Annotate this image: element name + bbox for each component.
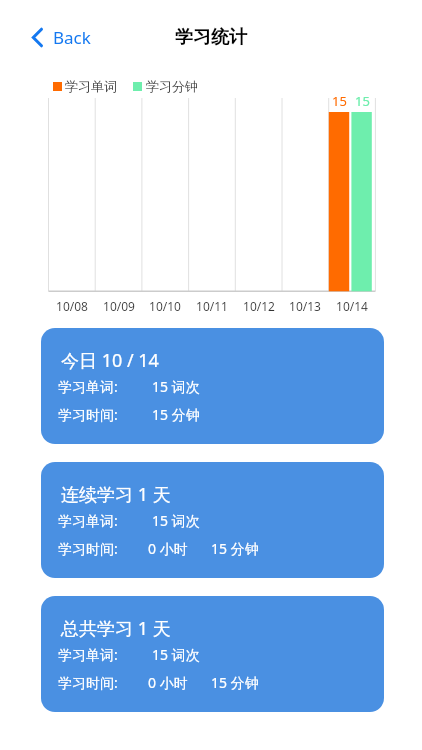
staticText: 0 小时	[148, 539, 188, 558]
staticText: 10/12	[243, 298, 275, 314]
staticText: 10/09	[103, 298, 135, 314]
button[interactable]: 连续学习 1 天	[41, 462, 384, 578]
staticText: 学习时间:	[58, 673, 118, 692]
staticText: 学习统计	[175, 26, 247, 49]
staticText: 15	[355, 92, 370, 110]
staticText: 10/11	[196, 298, 228, 314]
staticText: 今日 10 / 14	[61, 348, 159, 373]
staticText: 15	[332, 92, 347, 110]
staticText: 学习单词:	[58, 645, 118, 664]
staticText: 学习时间:	[58, 405, 118, 424]
staticText: 学习分钟	[146, 78, 198, 94]
staticText: 10/08	[56, 298, 88, 314]
button[interactable]: 总共学习 1 天	[41, 596, 384, 712]
staticText: 总共学习 1 天	[61, 616, 171, 641]
staticText: 15 分钟	[211, 539, 259, 558]
staticText: 15 分钟	[152, 405, 200, 424]
staticText: Back	[53, 26, 91, 49]
staticText: 15 词次	[152, 645, 200, 664]
staticText: 10/10	[149, 298, 181, 314]
staticText: 0 小时	[148, 673, 188, 692]
staticText: 15 词次	[152, 377, 200, 396]
button[interactable]: 今日 10 / 14	[41, 328, 384, 444]
staticText: 15 词次	[152, 511, 200, 530]
staticText: 学习单词:	[58, 511, 118, 530]
staticText: 15 分钟	[211, 673, 259, 692]
staticText: 连续学习 1 天	[61, 482, 171, 507]
staticText: 学习单词:	[58, 377, 118, 396]
button[interactable]: Back	[24, 22, 100, 52]
staticText: 10/13	[289, 298, 321, 314]
staticText: 学习单词	[65, 78, 117, 94]
staticText: 学习时间:	[58, 539, 118, 558]
staticText: 10/14	[336, 298, 368, 314]
